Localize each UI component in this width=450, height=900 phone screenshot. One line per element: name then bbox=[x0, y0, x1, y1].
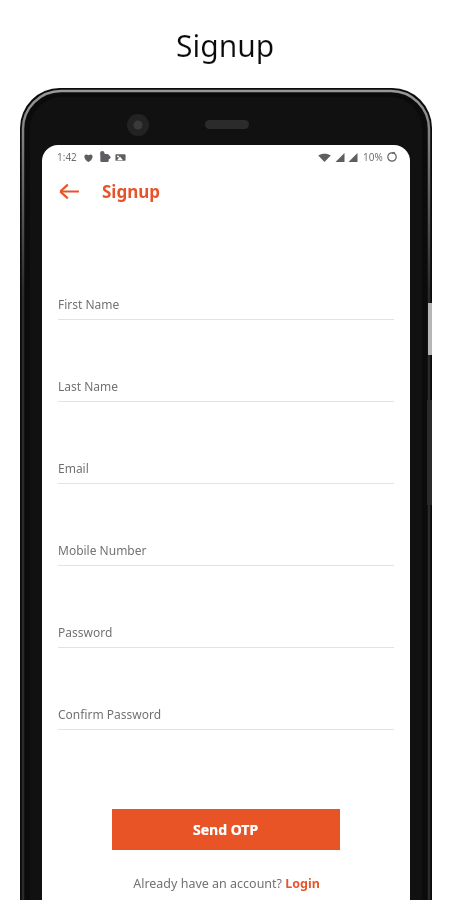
staticText: Signup bbox=[102, 180, 161, 203]
button[interactable]: Send OTP bbox=[112, 809, 340, 850]
staticText: Confirm Password bbox=[58, 706, 162, 722]
staticText: Email bbox=[58, 460, 89, 476]
staticText: Already have an account? Login bbox=[133, 875, 320, 892]
staticText: 1:42 bbox=[57, 150, 77, 164]
button[interactable]: First Name bbox=[42, 296, 410, 378]
staticText: Password bbox=[58, 624, 113, 640]
staticText: Signup bbox=[176, 25, 275, 66]
button[interactable]: Mobile Number bbox=[42, 542, 410, 624]
staticText: 10% bbox=[363, 150, 383, 164]
button[interactable]: Already have an account? Login bbox=[125, 871, 328, 896]
button[interactable]: Email bbox=[42, 460, 410, 542]
button[interactable]: Back bbox=[50, 172, 88, 210]
button[interactable]: Password bbox=[42, 624, 410, 706]
staticText: Send OTP bbox=[193, 820, 259, 839]
staticText: Mobile Number bbox=[58, 542, 147, 558]
staticText: First Name bbox=[58, 296, 120, 312]
button[interactable]: Confirm Password bbox=[42, 706, 410, 788]
button[interactable]: Last Name bbox=[42, 378, 410, 460]
staticText: Last Name bbox=[58, 378, 119, 394]
